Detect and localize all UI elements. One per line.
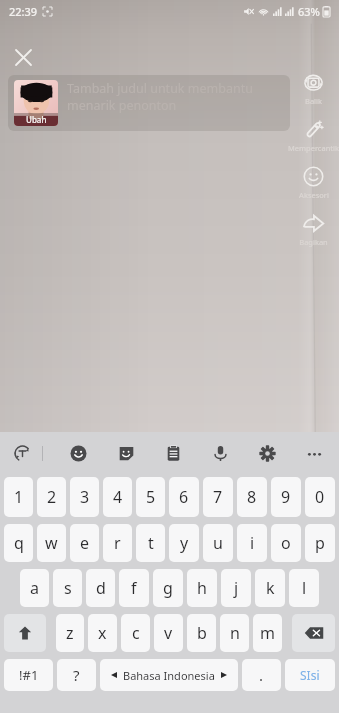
button[interactable]: 1 xyxy=(4,477,33,517)
staticText: q xyxy=(14,532,24,554)
button[interactable]: p xyxy=(305,524,335,562)
button[interactable]: 0 xyxy=(305,477,335,517)
button[interactable]: Papan klip xyxy=(160,440,186,466)
button[interactable]: x xyxy=(88,614,117,652)
button[interactable]: 6 xyxy=(169,477,199,517)
button[interactable]: Emoji xyxy=(65,440,91,466)
staticText: f xyxy=(131,577,137,599)
staticText: Bahasa Indonesia xyxy=(123,668,215,683)
staticText: 63% xyxy=(298,4,320,19)
button[interactable]: Bagikan xyxy=(288,213,339,247)
staticText: ? xyxy=(73,665,80,685)
button[interactable]: Mikrofon xyxy=(207,440,233,466)
staticText: 0 xyxy=(315,486,325,508)
staticText: 1 xyxy=(14,486,24,508)
staticText: Tambah judul untuk membantu menarik peno… xyxy=(67,80,282,113)
staticText: w xyxy=(45,532,58,554)
button[interactable]: f xyxy=(119,569,149,607)
staticText: v xyxy=(164,622,173,644)
staticText: Balik xyxy=(305,96,322,106)
button[interactable]: h xyxy=(187,569,217,607)
staticText: m xyxy=(260,622,275,644)
button[interactable]: Tutup xyxy=(7,41,39,73)
staticText: i xyxy=(250,532,255,554)
staticText: 6 xyxy=(179,486,189,508)
button[interactable]: Lainnya xyxy=(301,440,327,466)
button[interactable]: Bahasa Indonesia xyxy=(100,659,238,691)
button[interactable]: i xyxy=(237,524,267,562)
button[interactable]: d xyxy=(86,569,115,607)
button[interactable]: Shift xyxy=(4,614,46,652)
button[interactable]: z xyxy=(56,614,84,652)
button[interactable]: e xyxy=(70,524,99,562)
staticText: n xyxy=(230,622,240,644)
button[interactable]: r xyxy=(103,524,132,562)
staticText: y xyxy=(180,532,189,554)
button[interactable]: Setelan xyxy=(254,440,280,466)
staticText: !#1 xyxy=(19,666,39,684)
staticText: 22:39 xyxy=(9,4,38,19)
button[interactable]: w xyxy=(37,524,66,562)
button[interactable]: ? xyxy=(57,659,96,691)
staticText: 2 xyxy=(47,486,57,508)
staticText: Ubah xyxy=(26,114,47,125)
button[interactable]: n xyxy=(220,614,249,652)
button[interactable]: SIsi xyxy=(285,659,335,691)
button[interactable]: 4 xyxy=(103,477,132,517)
staticText: 5 xyxy=(146,486,156,508)
staticText: 4 xyxy=(113,486,123,508)
button[interactable]: Aksesori xyxy=(288,166,339,200)
button[interactable]: 7 xyxy=(203,477,233,517)
button[interactable]: 2 xyxy=(37,477,66,517)
staticText: z xyxy=(66,622,74,644)
button[interactable]: Ubah xyxy=(8,75,290,131)
staticText: g xyxy=(163,577,173,599)
button[interactable]: o xyxy=(271,524,301,562)
button[interactable]: y xyxy=(169,524,199,562)
staticText: r xyxy=(114,532,121,554)
staticText: Bagikan xyxy=(299,237,328,247)
button[interactable]: 8 xyxy=(237,477,267,517)
button[interactable]: u xyxy=(203,524,233,562)
staticText: 9 xyxy=(281,486,291,508)
button[interactable]: Terjemahkan xyxy=(9,440,35,466)
button[interactable]: t xyxy=(136,524,165,562)
staticText: h xyxy=(197,577,207,599)
staticText: 3 xyxy=(80,486,90,508)
button[interactable]: . xyxy=(242,659,281,691)
button[interactable]: q xyxy=(4,524,33,562)
button[interactable]: Ubah xyxy=(14,80,58,126)
button[interactable]: !#1 xyxy=(4,659,53,691)
staticText: . xyxy=(259,665,264,685)
staticText: Mempercantik xyxy=(288,143,339,153)
button[interactable]: a xyxy=(20,569,49,607)
staticText: j xyxy=(234,577,239,599)
button[interactable]: s xyxy=(53,569,82,607)
staticText: p xyxy=(315,532,325,554)
staticText: c xyxy=(132,622,140,644)
button[interactable]: v xyxy=(154,614,183,652)
button[interactable]: j xyxy=(221,569,251,607)
staticText: t xyxy=(148,532,154,554)
button[interactable]: c xyxy=(121,614,150,652)
staticText: s xyxy=(64,577,72,599)
button[interactable]: g xyxy=(153,569,183,607)
staticText: 7 xyxy=(213,486,223,508)
button[interactable]: l xyxy=(289,569,319,607)
button[interactable]: 5 xyxy=(136,477,165,517)
button[interactable]: Balik xyxy=(288,72,339,106)
button[interactable]: 9 xyxy=(271,477,301,517)
button[interactable]: k xyxy=(255,569,285,607)
staticText: l xyxy=(302,577,307,599)
staticText: k xyxy=(266,577,275,599)
button[interactable]: Hapus xyxy=(292,614,335,652)
button[interactable]: b xyxy=(187,614,216,652)
button[interactable]: Stiker xyxy=(113,440,139,466)
staticText: SIsi xyxy=(300,667,320,683)
button[interactable]: 3 xyxy=(70,477,99,517)
button[interactable]: m xyxy=(253,614,282,652)
staticText: d xyxy=(96,577,106,599)
staticText: x xyxy=(98,622,107,644)
button[interactable]: Mempercantik xyxy=(288,119,339,153)
staticText: Aksesori xyxy=(299,190,329,200)
